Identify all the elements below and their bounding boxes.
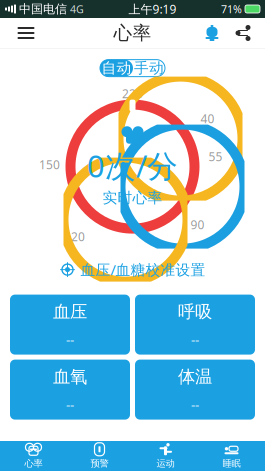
staticText: 心率 [24, 458, 42, 469]
button[interactable]: 血氧 [10, 360, 130, 420]
button[interactable]: 血压/血糖校准设置 [47, 257, 217, 283]
button[interactable]: 运动 [132, 441, 198, 471]
staticText: 心率 [113, 21, 151, 44]
button[interactable]: 呼吸 [135, 295, 255, 355]
staticText: 血压/血糖校准设置 [80, 260, 205, 279]
staticText: -- [191, 395, 199, 413]
staticText: 血氧 [53, 366, 87, 387]
button[interactable]: 睡眠 [198, 441, 264, 471]
staticText: 血压 [53, 301, 87, 322]
staticText: -- [191, 330, 199, 348]
staticText: 手动 [134, 59, 164, 77]
staticText: 实时心率 [102, 189, 162, 207]
button[interactable]: 预警 [66, 441, 132, 471]
staticText: 90 [190, 217, 204, 232]
staticText: 0次/分 [87, 145, 178, 186]
button[interactable]: 体温 [135, 360, 255, 420]
button[interactable]: 手动 [133, 60, 165, 77]
button[interactable]: 自动 [100, 60, 133, 77]
staticText: 220 [122, 86, 143, 101]
staticText: 40 [200, 111, 214, 126]
button[interactable]: 分享 [227, 18, 259, 48]
staticText: 睡眠 [222, 458, 240, 469]
staticText: -- [66, 330, 74, 348]
button[interactable]: 血压 [10, 295, 130, 355]
staticText: -- [66, 395, 74, 413]
staticText: 运动 [156, 458, 174, 469]
button[interactable]: 通知 [197, 18, 227, 48]
staticText: 150 [39, 157, 60, 172]
staticText: 120 [64, 229, 85, 244]
staticText: 中国电信 [19, 2, 67, 16]
button[interactable]: 菜单 [6, 18, 46, 48]
staticText: 呼吸 [178, 301, 212, 322]
staticText: 4G [70, 2, 84, 16]
staticText: 上午9:19 [128, 1, 176, 17]
staticText: 自动 [101, 59, 131, 77]
staticText: 71% [221, 2, 242, 16]
staticText: 体温 [178, 366, 212, 387]
staticText: 预警 [90, 458, 108, 469]
staticText: 55 [208, 149, 222, 164]
button[interactable]: 心率 [0, 441, 66, 471]
